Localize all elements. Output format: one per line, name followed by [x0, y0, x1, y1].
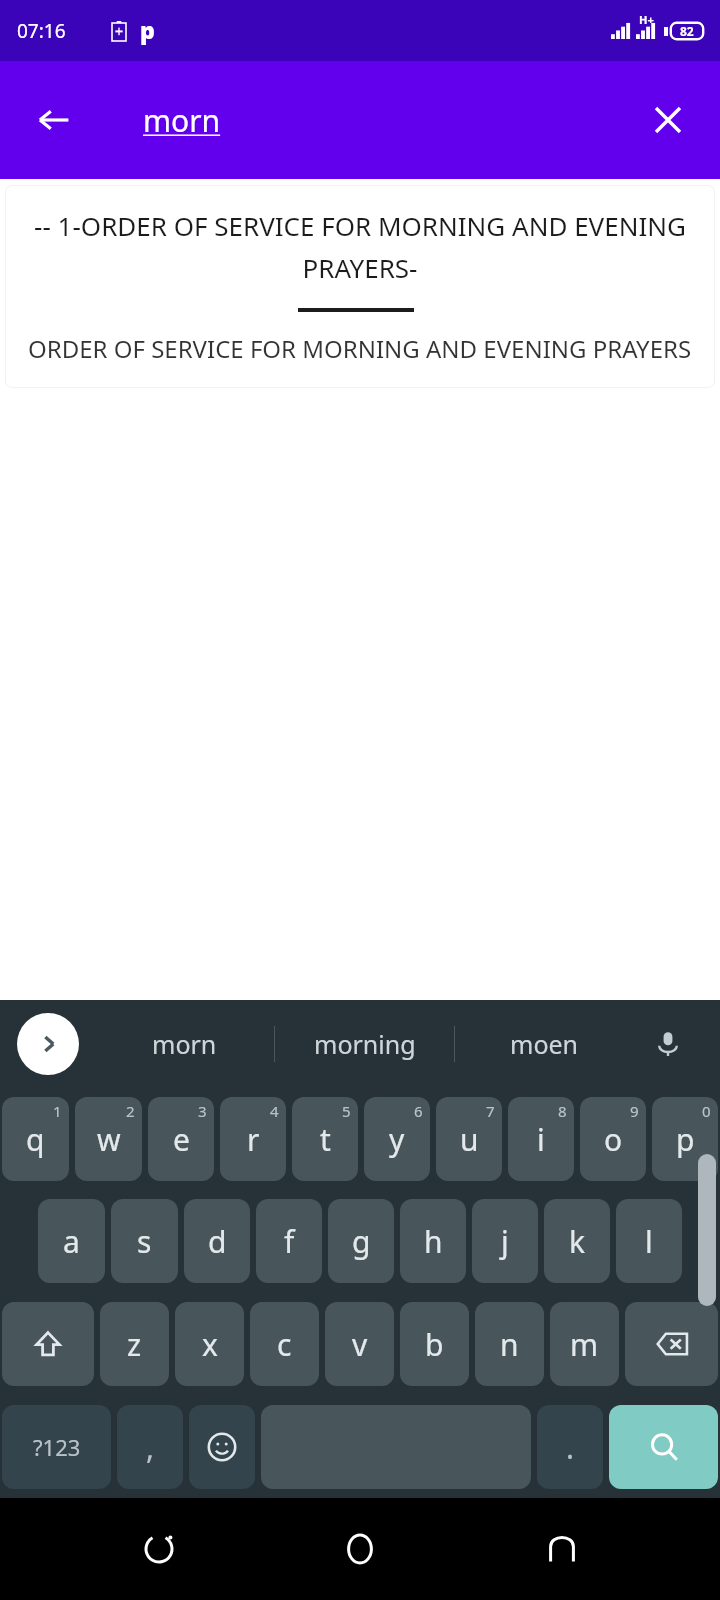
button[interactable]: m	[550, 1302, 619, 1386]
staticText: u	[460, 1119, 479, 1160]
staticText: m	[570, 1324, 599, 1365]
button[interactable]: a	[38, 1199, 105, 1283]
button[interactable]: 5	[292, 1097, 358, 1181]
button[interactable]: moen	[455, 1009, 634, 1079]
staticText: 07:16	[17, 18, 66, 44]
staticText: 7	[486, 1101, 495, 1121]
button[interactable]: .	[537, 1405, 603, 1489]
button[interactable]: Search	[609, 1405, 718, 1489]
button[interactable]: d	[184, 1199, 250, 1283]
staticText: 5	[342, 1101, 351, 1121]
button[interactable]: 9	[580, 1097, 646, 1181]
staticText: 6	[414, 1101, 423, 1121]
staticText: o	[604, 1119, 623, 1160]
button[interactable]: Voice input	[642, 1018, 694, 1070]
staticText: p	[140, 14, 155, 45]
button[interactable]: b	[400, 1302, 469, 1386]
staticText: 2	[126, 1101, 135, 1121]
button[interactable]: Recent apps	[116, 1506, 202, 1592]
button[interactable]: g	[328, 1199, 394, 1283]
staticText: q	[26, 1119, 45, 1160]
staticText: morning	[314, 1027, 416, 1061]
staticText: c	[277, 1324, 292, 1365]
staticText: g	[352, 1221, 371, 1262]
staticText: ,	[146, 1427, 155, 1468]
staticText: v	[352, 1324, 368, 1365]
staticText: 82	[680, 23, 694, 39]
staticText: 3	[198, 1101, 207, 1121]
button[interactable]: l	[616, 1199, 682, 1283]
staticText: z	[127, 1324, 142, 1365]
staticText: 9	[630, 1101, 639, 1121]
staticText: l	[645, 1221, 653, 1262]
staticText: 1	[53, 1101, 62, 1121]
button[interactable]: v	[325, 1302, 394, 1386]
button[interactable]: 2	[75, 1097, 142, 1181]
button[interactable]: 3	[148, 1097, 214, 1181]
staticText: h	[424, 1221, 443, 1262]
button[interactable]: j	[472, 1199, 538, 1283]
button[interactable]: f	[256, 1199, 322, 1283]
staticText: morn	[152, 1027, 217, 1061]
button[interactable]: 8	[508, 1097, 574, 1181]
button[interactable]: c	[250, 1302, 319, 1386]
button[interactable]: x	[175, 1302, 244, 1386]
staticText: x	[202, 1324, 218, 1365]
staticText: 4	[270, 1101, 279, 1121]
button[interactable]: 6	[364, 1097, 430, 1181]
button[interactable]: 4	[220, 1097, 286, 1181]
staticText: H+	[639, 12, 654, 27]
staticText: -- 1-ORDER OF SERVICE FOR MORNING AND EV…	[28, 208, 692, 286]
staticText: r	[247, 1119, 260, 1160]
staticText: k	[569, 1221, 586, 1262]
button[interactable]: morn	[94, 1009, 274, 1079]
staticText: morn	[143, 100, 221, 141]
button[interactable]: Home	[317, 1506, 403, 1592]
staticText: i	[537, 1119, 545, 1160]
staticText: moen	[510, 1027, 579, 1061]
button[interactable]: -- 1-ORDER OF SERVICE FOR MORNING AND EV…	[6, 186, 714, 387]
button[interactable]: k	[544, 1199, 610, 1283]
staticText: p	[676, 1119, 695, 1160]
staticText: e	[173, 1119, 190, 1160]
staticText: b	[425, 1324, 444, 1365]
staticText: j	[501, 1221, 509, 1262]
staticText: d	[208, 1221, 227, 1262]
staticText: .	[566, 1427, 575, 1468]
button[interactable]: h	[400, 1199, 466, 1283]
staticText: t	[320, 1119, 331, 1160]
button[interactable]: Back	[22, 88, 86, 152]
button[interactable]: Backspace	[625, 1302, 718, 1386]
staticText: n	[500, 1324, 519, 1365]
button[interactable]: 7	[436, 1097, 502, 1181]
button[interactable]: ,	[117, 1405, 183, 1489]
button[interactable]: Emoji	[189, 1405, 255, 1489]
button[interactable]: z	[100, 1302, 169, 1386]
button[interactable]: morning	[275, 1009, 454, 1079]
staticText: 8	[558, 1101, 567, 1121]
button[interactable]: Shift	[2, 1302, 94, 1386]
button[interactable]: More suggestions	[17, 1013, 79, 1075]
staticText: 0	[702, 1101, 711, 1121]
staticText: s	[137, 1221, 152, 1262]
button[interactable]: s	[111, 1199, 178, 1283]
staticText: ORDER OF SERVICE FOR MORNING AND EVENING…	[28, 332, 692, 365]
staticText: y	[389, 1119, 405, 1160]
button[interactable]: Back	[519, 1506, 605, 1592]
staticText: a	[63, 1221, 80, 1262]
button[interactable]: 0	[652, 1097, 718, 1181]
button[interactable]: 1	[2, 1097, 69, 1181]
staticText: f	[284, 1221, 295, 1262]
button[interactable]: ?123	[2, 1405, 111, 1489]
button[interactable]: morn	[143, 100, 221, 141]
button[interactable]: n	[475, 1302, 544, 1386]
staticText: w	[97, 1119, 121, 1160]
button[interactable]: Clear search	[636, 88, 700, 152]
staticText: ?123	[33, 1432, 81, 1462]
